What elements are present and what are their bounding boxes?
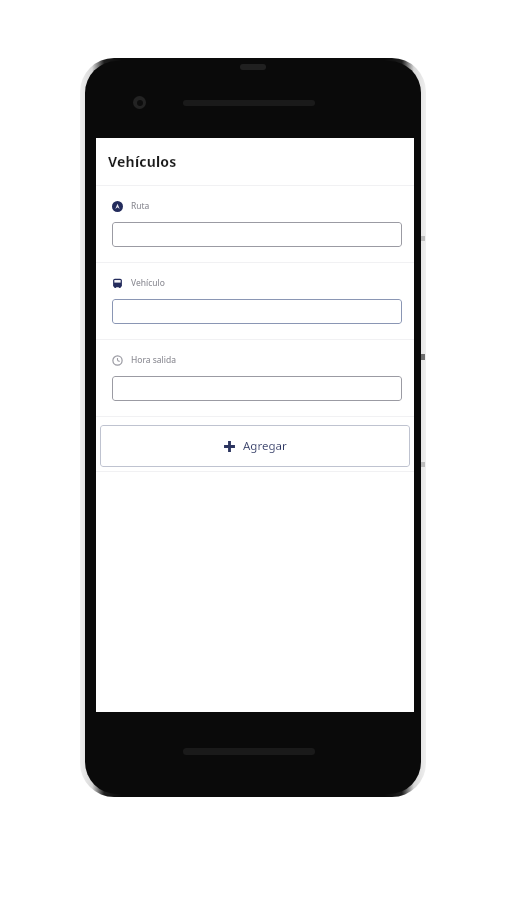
button[interactable]: Hora salida (112, 376, 402, 401)
button[interactable]: Ruta (112, 222, 402, 247)
staticText: Vehículo (131, 277, 165, 289)
staticText: Agregar (243, 438, 287, 454)
button[interactable]: Vehículo (112, 299, 402, 324)
staticText: Ruta (131, 200, 150, 212)
staticText: Vehículos (108, 152, 177, 171)
staticText: Hora salida (131, 354, 176, 366)
button[interactable]: Agregar (100, 425, 410, 467)
